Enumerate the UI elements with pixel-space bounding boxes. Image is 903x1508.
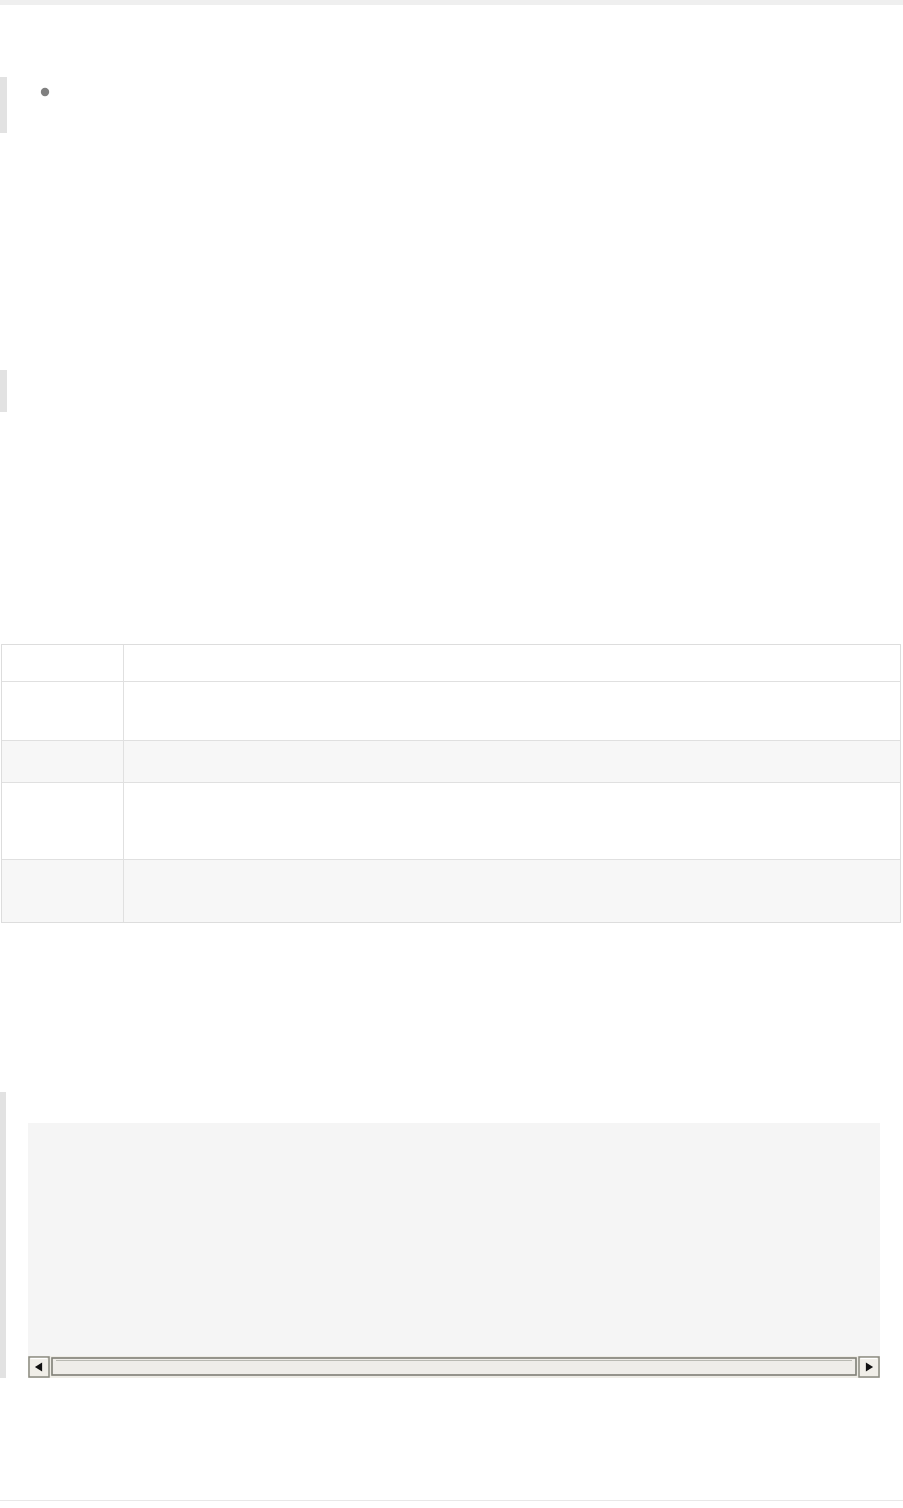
button[interactable]: Scroll left: [28, 1356, 50, 1378]
button[interactable]: [50, 1356, 858, 1378]
button[interactable]: [30, 77, 60, 107]
button[interactable]: Scroll right: [858, 1356, 880, 1378]
